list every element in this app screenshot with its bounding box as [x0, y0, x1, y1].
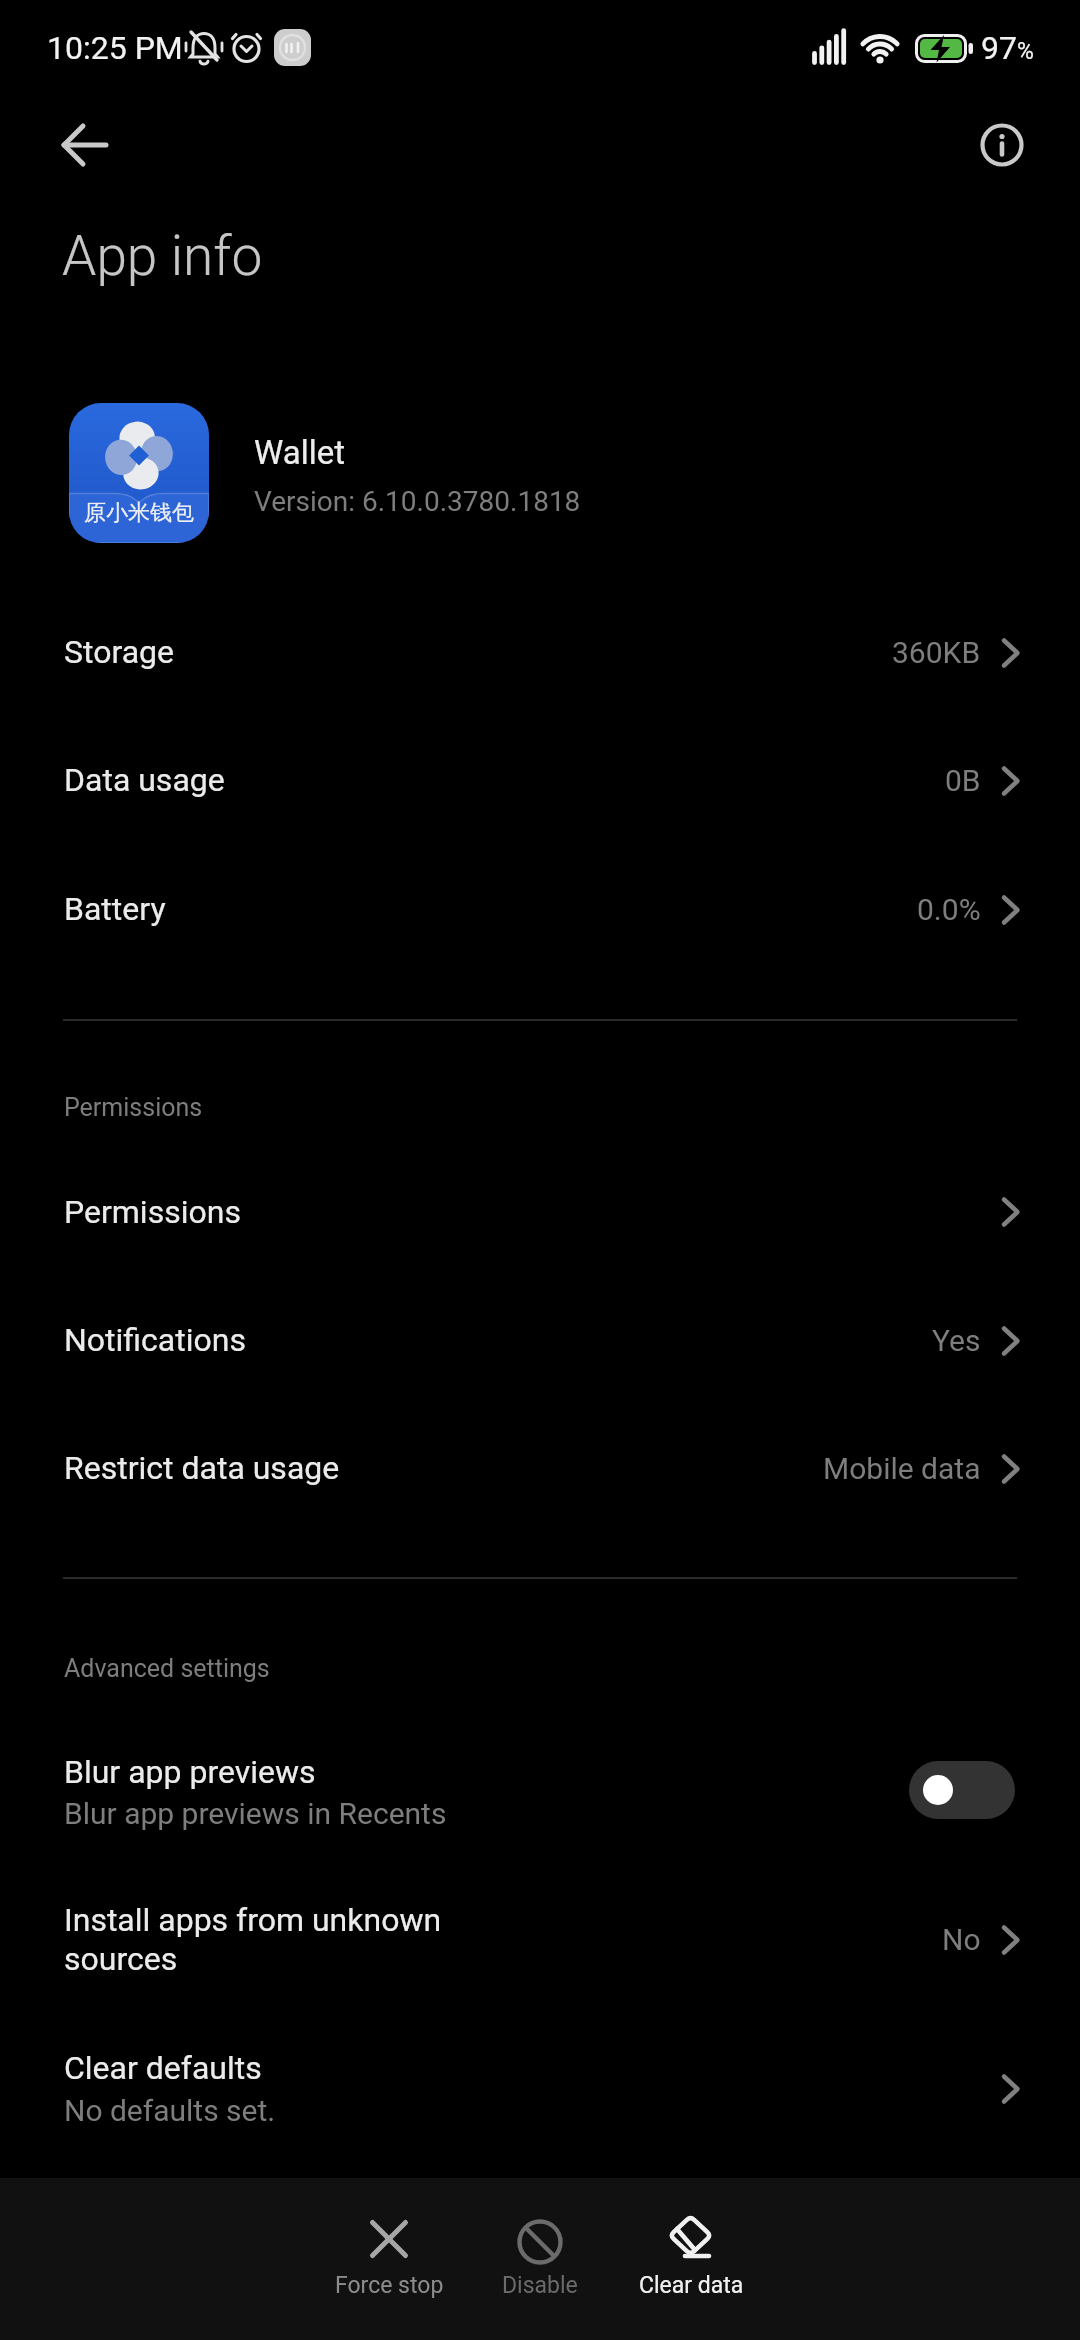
staticText: No defaults set. — [64, 2093, 276, 2128]
staticText: Blur app previews in Recents — [64, 1796, 447, 1831]
staticText: Storage — [64, 633, 174, 671]
staticText: Clear data — [639, 2272, 744, 2299]
button[interactable]: Storage — [0, 588, 1080, 716]
button[interactable]: Clear defaults — [0, 2010, 1080, 2168]
staticText: Version: 6.10.0.3780.1818 — [254, 485, 581, 518]
staticText: 97% — [981, 29, 1034, 67]
button[interactable] — [909, 1761, 1015, 1819]
staticText: Mobile data — [823, 1451, 981, 1486]
staticText: App info — [62, 224, 263, 288]
staticText: Disable — [502, 2272, 578, 2299]
staticText: Permissions — [64, 1093, 203, 1122]
staticText: No — [942, 1922, 981, 1957]
staticText: Blur app previews — [64, 1753, 316, 1791]
staticText: sources — [64, 1940, 178, 1978]
staticText: 原小米钱包 — [84, 499, 194, 527]
staticText: 360KB — [892, 635, 981, 670]
staticText: 10:25 PM — [47, 29, 183, 67]
staticText: Wallet — [254, 433, 346, 472]
button[interactable]: Disable — [465, 2178, 615, 2340]
button[interactable]: Notifications — [0, 1276, 1080, 1404]
staticText: Force stop — [335, 2272, 444, 2299]
button[interactable]: Restrict data usage — [0, 1404, 1080, 1532]
staticText: 0B — [945, 763, 981, 798]
staticText: Install apps from unknown — [64, 1901, 442, 1939]
staticText: 0.0% — [917, 892, 981, 927]
button[interactable]: Clear data — [616, 2178, 766, 2340]
button[interactable]: Data usage — [0, 716, 1080, 844]
button[interactable]: Permissions — [0, 1148, 1080, 1276]
button[interactable]: Install apps from unknown — [0, 1860, 1080, 2018]
button[interactable]: Battery — [0, 845, 1080, 973]
button[interactable]: 原小米钱包 — [69, 403, 209, 543]
staticText: Data usage — [64, 761, 225, 799]
staticText: Restrict data usage — [64, 1449, 340, 1487]
staticText: Clear defaults — [64, 2049, 262, 2087]
staticText: Battery — [64, 890, 166, 928]
button[interactable]: Force stop — [314, 2178, 464, 2340]
button[interactable] — [960, 105, 1044, 185]
staticText: Advanced settings — [64, 1654, 270, 1683]
button[interactable] — [40, 105, 130, 185]
staticText: Yes — [932, 1323, 981, 1358]
staticText: Permissions — [64, 1193, 241, 1231]
button[interactable]: Blur app previews — [0, 1710, 1080, 1870]
staticText: Notifications — [64, 1321, 246, 1359]
